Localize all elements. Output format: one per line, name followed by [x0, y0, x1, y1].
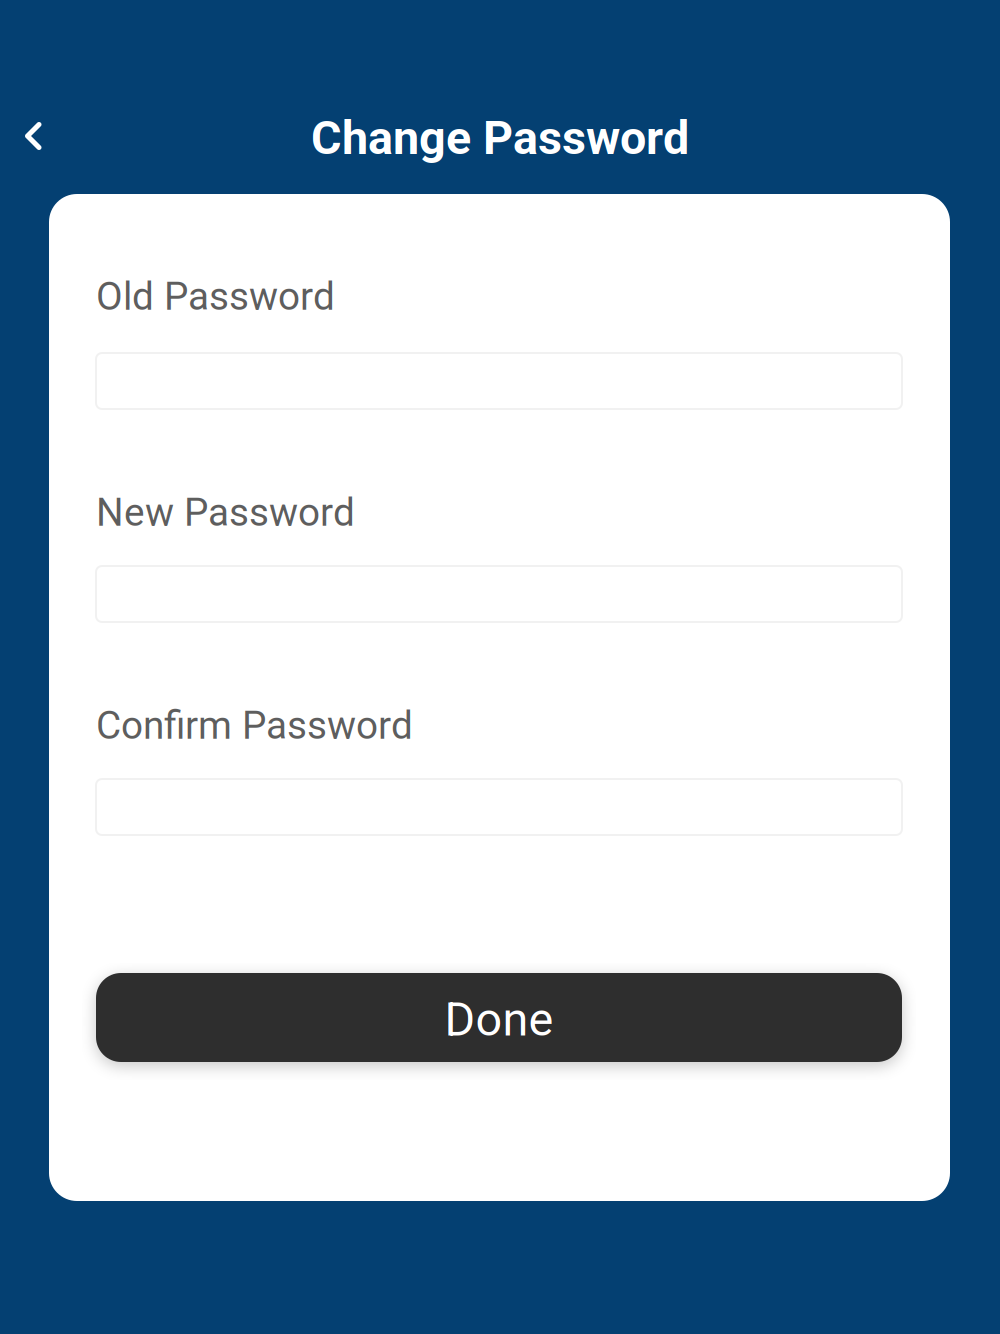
- staticText: Old Password: [96, 274, 335, 319]
- staticText: Confirm Password: [96, 703, 413, 748]
- staticText: Done: [444, 992, 553, 1047]
- staticText: Change Password: [311, 111, 689, 165]
- button[interactable]: Back: [1, 104, 65, 168]
- button[interactable]: Done: [96, 973, 902, 1062]
- staticText: New Password: [96, 490, 355, 535]
